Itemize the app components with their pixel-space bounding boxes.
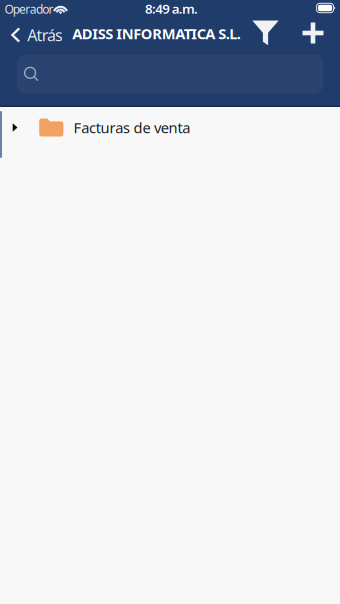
staticText: Operador: [4, 1, 54, 17]
staticText: 8:49 a.m.: [145, 0, 198, 17]
staticText: Atrás: [27, 24, 63, 46]
button[interactable]: Buscar documento: [17, 54, 323, 93]
button[interactable]: Facturas de venta: [0, 107, 340, 148]
button[interactable]: Filtrar: [248, 14, 282, 50]
button[interactable]: Añadir: [296, 15, 330, 51]
button[interactable]: Atrás: [1, 17, 67, 53]
staticText: Facturas de venta: [73, 118, 190, 137]
staticText: ADISS INFORMATICA S.L.: [72, 24, 241, 43]
